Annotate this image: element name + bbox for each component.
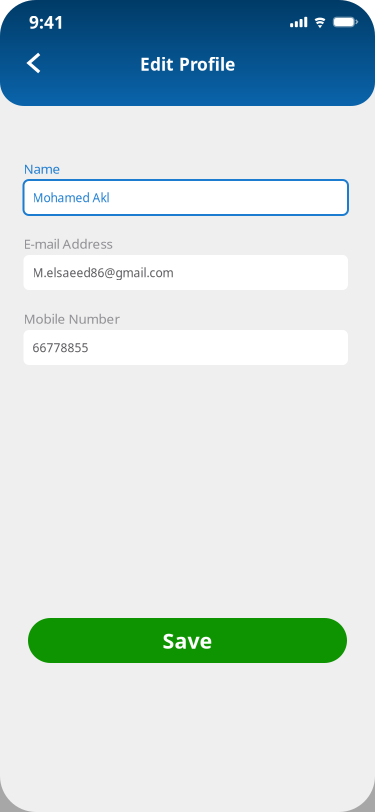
staticText: 9:41	[29, 10, 64, 33]
staticText: Name	[23, 160, 60, 177]
staticText: E-mail Address	[23, 235, 112, 252]
staticText: Mobile Number	[23, 310, 120, 327]
button[interactable]: 66778855	[23, 330, 348, 365]
button[interactable]: Mohamed Akl	[23, 180, 348, 215]
button[interactable]: Save	[28, 618, 347, 663]
staticText: M.elsaeed86@gmail.com	[32, 264, 173, 280]
staticText: 66778855	[32, 339, 88, 355]
staticText: Mohamed Akl	[32, 189, 109, 205]
button[interactable]: M.elsaeed86@gmail.com	[23, 255, 348, 290]
staticText: Edit Profile	[140, 52, 235, 75]
staticText: Save	[162, 626, 212, 655]
button[interactable]: Back	[17, 45, 51, 81]
